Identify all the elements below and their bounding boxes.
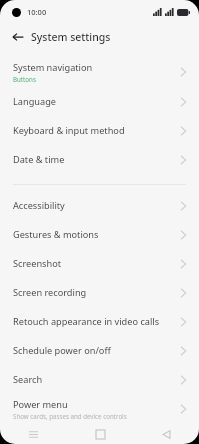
staticText: Accessibility <box>13 199 65 212</box>
staticText: Keyboard & input method <box>13 124 125 137</box>
button[interactable]: Retouch appearance in video calls <box>0 307 199 336</box>
staticText: Schedule power on/off <box>13 344 111 357</box>
button[interactable]: Screen recording <box>0 278 199 307</box>
staticText: Screenshot <box>13 257 62 270</box>
button[interactable]: Gestures & motions <box>0 220 199 249</box>
staticText: Date & time <box>13 153 65 166</box>
staticText: Show cards, passes and device controls <box>13 412 127 420</box>
button[interactable]: Power menu <box>0 394 199 424</box>
staticText: Retouch appearance in video calls <box>13 315 160 328</box>
staticText: 10:00 <box>27 7 47 17</box>
staticText: Search <box>13 373 43 386</box>
button[interactable]: Date & time <box>0 145 199 174</box>
staticText: Language <box>13 95 56 108</box>
button[interactable]: Schedule power on/off <box>0 336 199 365</box>
staticText: Power menu <box>13 398 68 411</box>
button[interactable]: Language <box>0 87 199 116</box>
staticText: Gestures & motions <box>13 228 99 241</box>
button[interactable]: Home <box>67 424 133 444</box>
button[interactable]: Keyboard & input method <box>0 116 199 145</box>
staticText: System settings <box>31 30 111 44</box>
button[interactable]: Back <box>133 424 199 444</box>
button[interactable]: Recent apps <box>0 424 67 444</box>
button[interactable]: Accessibility <box>0 191 199 220</box>
button[interactable]: Screenshot <box>0 249 199 278</box>
button[interactable]: Back <box>9 28 27 46</box>
staticText: System navigation <box>13 61 93 74</box>
staticText: Buttons <box>13 75 36 83</box>
button[interactable]: System navigation <box>0 57 199 87</box>
staticText: Screen recording <box>13 286 87 299</box>
button[interactable]: Search <box>0 365 199 394</box>
